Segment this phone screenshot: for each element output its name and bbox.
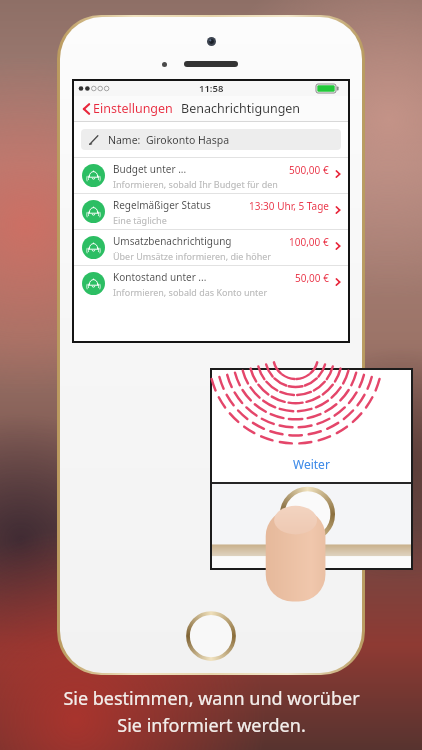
button[interactable]: Kontostand unter ...: [74, 266, 348, 301]
staticText: Umsatzbenachrichtigung: [113, 234, 232, 248]
button[interactable]: Name: Girokonto Haspa: [81, 129, 341, 150]
staticText: Benachrichtigungen: [181, 100, 301, 117]
staticText: Informieren, sobald Ihr Budget für den a…: [113, 178, 285, 190]
staticText: Informieren, sobald das Konto unter eine…: [113, 286, 291, 298]
staticText: Weiter: [293, 456, 330, 472]
staticText: 50,00 €: [295, 271, 329, 285]
staticText: Regelmäßiger Status: [113, 198, 211, 212]
staticText: Sie bestimmen, wann und worüber: [63, 686, 360, 711]
button[interactable]: Budget unter ...: [74, 158, 348, 193]
staticText: 11:58: [199, 82, 224, 95]
button[interactable]: Weiter: [287, 450, 336, 478]
staticText: Budget unter ...: [113, 162, 187, 176]
button[interactable]: Regelmäßiger Status: [74, 194, 348, 229]
staticText: Über Umsätze informieren, die höher sind…: [113, 250, 285, 262]
staticText: Sie informiert werden.: [117, 713, 306, 738]
staticText: 100,00 €: [289, 235, 329, 249]
staticText: Kontostand unter ...: [113, 270, 207, 284]
staticText: 500,00 €: [289, 163, 329, 177]
staticText: Eine tägliche Zusammenfassung über die U…: [113, 214, 245, 226]
button[interactable]: Umsatzbenachrichtigung: [74, 230, 348, 265]
button[interactable]: Zurück zu Einstellungen: [78, 98, 176, 119]
staticText: 13:30 Uhr, 5 Tage: [249, 199, 329, 213]
staticText: Einstellungen: [93, 100, 173, 117]
staticText: Name: Girokonto Haspa: [108, 133, 230, 147]
